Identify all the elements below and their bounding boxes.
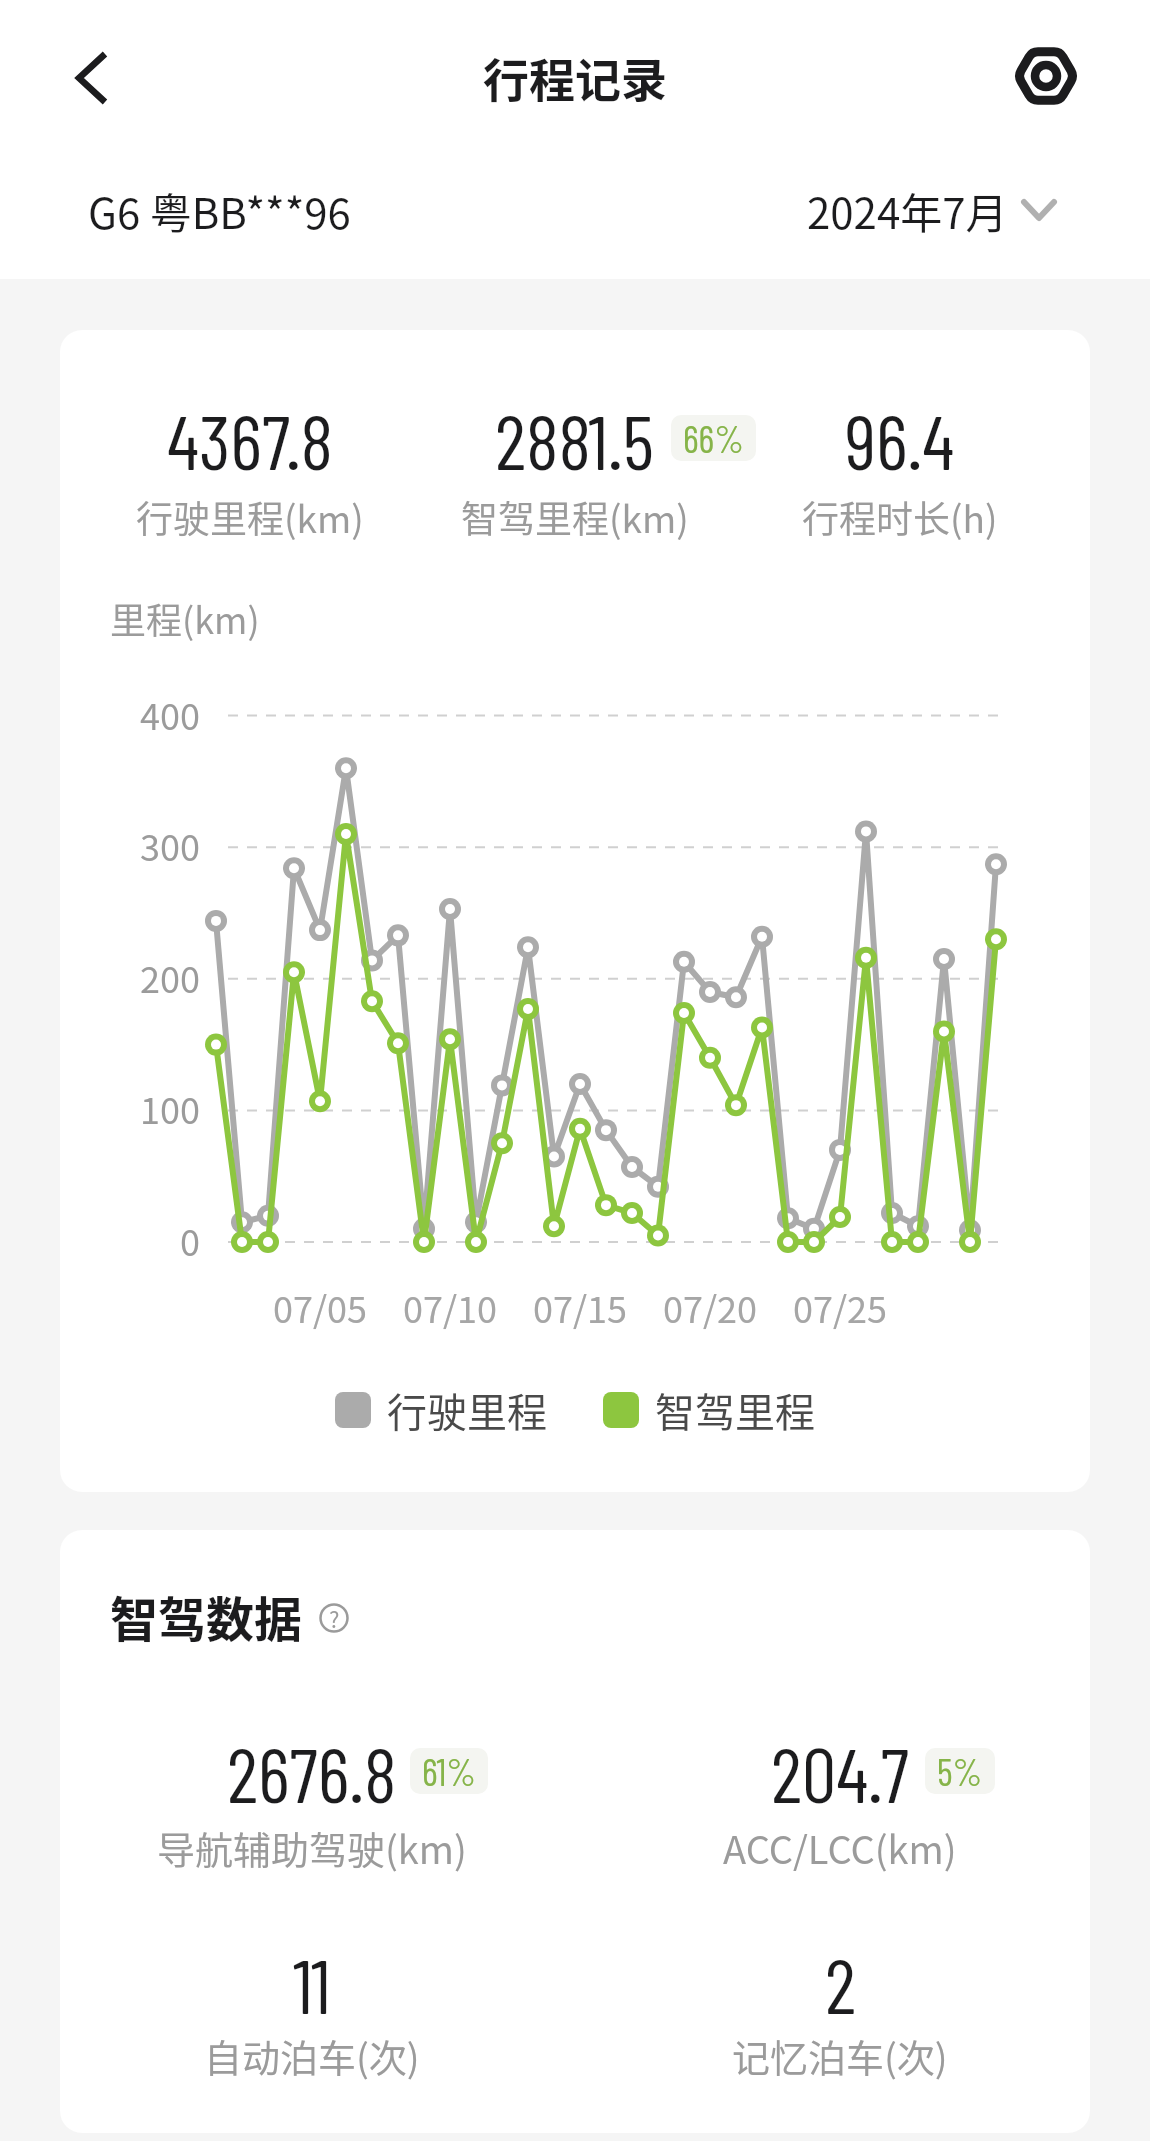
staticText: 智驾数据 (110, 1581, 303, 1651)
staticText: 2676.8 (227, 1726, 397, 1818)
staticText: 100 (140, 1082, 200, 1134)
staticText: 2 (825, 1937, 856, 2029)
staticText: 行程时长(h) (802, 490, 998, 544)
button[interactable]: 2024年7月 (356, 150, 1056, 270)
staticText: 400 (140, 688, 200, 740)
staticText: 行驶里程(km) (136, 490, 364, 544)
staticText: 5% (937, 1748, 983, 1794)
staticText: ACC/LCC(km) (723, 1820, 957, 1875)
staticText: 07/15 (533, 1281, 628, 1333)
staticText: 4367.8 (167, 393, 334, 485)
staticText: 204.7 (771, 1726, 909, 1818)
staticText: 11 (293, 1937, 331, 2029)
staticText: 记忆泊车(次) (732, 2028, 948, 2083)
staticText: ? (329, 1602, 340, 1634)
button[interactable] (1010, 40, 1082, 112)
staticText: 07/25 (793, 1281, 888, 1333)
staticText: 61% (422, 1748, 476, 1794)
staticText: 07/10 (403, 1281, 498, 1333)
staticText: 行驶里程 (387, 1381, 547, 1439)
staticText: 0 (180, 1214, 200, 1266)
staticText: 07/05 (273, 1281, 368, 1333)
staticText: 导航辅助驾驶(km) (157, 1820, 467, 1875)
staticText: 2881.5 (495, 393, 655, 485)
staticText: G6 粤BB***96 (88, 180, 351, 241)
staticText: 自动泊车(次) (204, 2028, 420, 2083)
staticText: 智驾里程 (655, 1381, 815, 1439)
staticText: 300 (140, 819, 200, 871)
staticText: 智驾里程(km) (461, 490, 689, 544)
staticText: 2024年7月 (807, 180, 1008, 241)
button[interactable]: ? (314, 1598, 354, 1638)
staticText: 66% (683, 415, 744, 461)
button[interactable] (60, 46, 124, 110)
staticText: 行程记录 (483, 44, 667, 111)
staticText: 96.4 (845, 393, 955, 485)
staticText: 里程(km) (110, 592, 260, 644)
staticText: 200 (140, 951, 200, 1003)
staticText: 07/20 (663, 1281, 758, 1333)
